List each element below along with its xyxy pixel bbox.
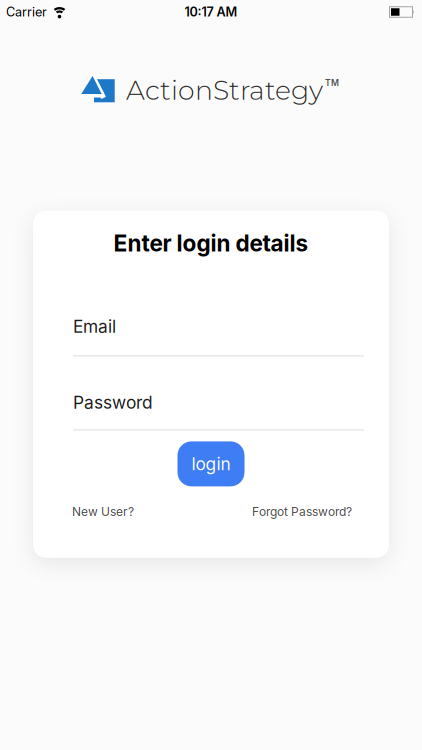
staticText: Carrier — [6, 4, 47, 20]
staticText: Email — [73, 316, 116, 337]
button[interactable]: Forgot Password? — [252, 504, 352, 519]
staticText: login — [191, 453, 230, 474]
button[interactable]: Password — [73, 392, 364, 430]
button[interactable]: login — [177, 441, 244, 486]
button[interactable]: New User? — [72, 504, 134, 519]
staticText: New User? — [72, 504, 134, 519]
staticText: Enter login details — [113, 229, 308, 257]
staticText: Password — [73, 392, 153, 413]
button[interactable]: Email — [73, 316, 364, 356]
staticText: 10:17 AM — [184, 4, 237, 20]
staticText: ActionStrategy — [126, 74, 323, 106]
staticText: Forgot Password? — [252, 504, 352, 519]
staticText: TM — [325, 77, 339, 88]
